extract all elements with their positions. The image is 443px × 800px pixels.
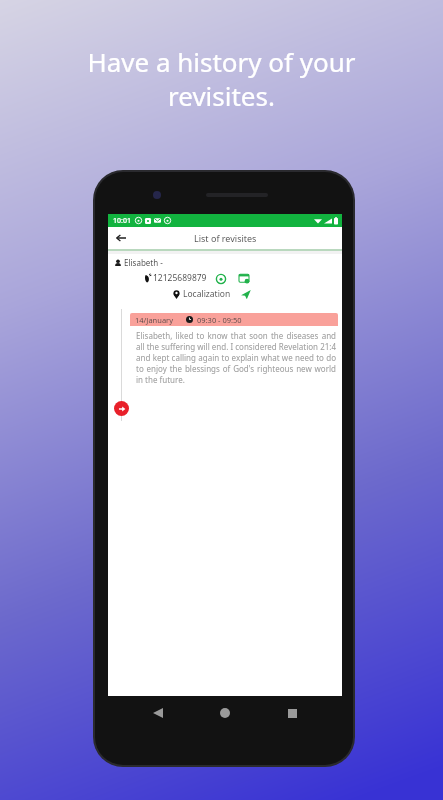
staticText: 10:01 xyxy=(113,216,131,226)
staticText: 12125689879 xyxy=(153,272,207,284)
button[interactable]: 14/January xyxy=(130,313,338,385)
button[interactable]: Home xyxy=(213,701,237,725)
staticText: 09:30 - 09:50 xyxy=(197,315,242,325)
staticText: Have a history of your revisites. xyxy=(87,44,356,113)
staticText: Localization xyxy=(183,288,231,300)
button[interactable]: Localization xyxy=(183,288,231,300)
button[interactable]: Navigate up xyxy=(112,229,130,247)
staticText: 14/January xyxy=(135,315,174,325)
staticText: Elisabeth, liked to know that soon the d… xyxy=(136,330,336,385)
staticText: Elisabeth - xyxy=(124,257,163,268)
button[interactable]: Schedule xyxy=(238,272,250,284)
staticText: List of revisites xyxy=(194,232,257,244)
button[interactable]: Recent apps xyxy=(280,701,304,725)
button[interactable]: Back xyxy=(146,701,170,725)
button[interactable]: WhatsApp xyxy=(215,273,226,284)
button[interactable]: Go to revisit xyxy=(114,401,129,416)
button[interactable]: Open in maps xyxy=(239,288,251,300)
